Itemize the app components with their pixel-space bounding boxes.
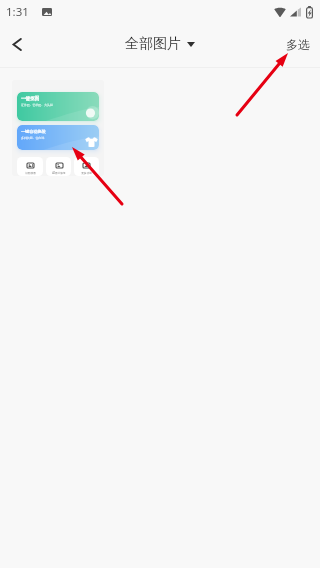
button[interactable]: 多选 [276,31,320,58]
staticText: 一键自动换装 [21,129,46,134]
button[interactable]: Back [1,29,32,60]
staticText: 证件照、艺术照、大头贴 [21,103,53,107]
button[interactable]: 全部图片 [119,31,201,57]
staticText: 多种衣服、任你选 [21,136,45,140]
button[interactable]: 识图搜图 [17,157,43,176]
button[interactable]: 一键自动换装 [17,125,99,150]
button[interactable]: 更多功能 [74,157,99,176]
staticText: 更多功能 [81,171,92,174]
staticText: 多选 [286,37,310,52]
staticText: 1:31 [6,4,29,20]
staticText: 识图搜图 [25,171,36,174]
staticText: 全部图片 [125,35,181,53]
staticText: 一键抠图 [21,96,40,102]
staticText: AI图片修复 [52,171,66,175]
button[interactable]: 一键抠图 [17,92,99,121]
button[interactable]: AI图片修复 [46,157,71,176]
